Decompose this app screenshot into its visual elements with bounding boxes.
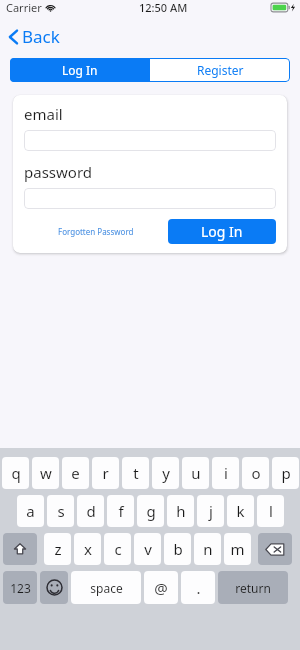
button[interactable]: Register <box>150 58 290 82</box>
staticText: d <box>86 501 96 521</box>
button[interactable] <box>24 188 276 209</box>
button[interactable]: Back <box>8 25 60 48</box>
staticText: email <box>24 104 63 124</box>
button[interactable]: space <box>71 571 141 604</box>
staticText: password <box>24 162 92 182</box>
button[interactable]: n <box>194 533 221 565</box>
button[interactable]: Log In <box>168 219 276 244</box>
staticText: 123 <box>10 580 31 596</box>
button[interactable]: p <box>272 457 299 489</box>
button[interactable]: d <box>77 495 104 527</box>
button[interactable]: Forgotten Password <box>24 219 168 244</box>
staticText: w <box>40 463 52 483</box>
staticText: h <box>176 501 186 521</box>
staticText: Log In <box>62 62 98 78</box>
staticText: l <box>269 501 273 521</box>
staticText: r <box>102 463 109 483</box>
button[interactable]: w <box>32 457 59 489</box>
button[interactable]: r <box>92 457 119 489</box>
staticText: return <box>235 580 271 596</box>
staticText: a <box>26 501 35 521</box>
staticText: Forgotten Password <box>58 226 134 237</box>
staticText: z <box>54 539 62 559</box>
button[interactable]: u <box>182 457 209 489</box>
button[interactable]: q <box>2 457 29 489</box>
button[interactable]: g <box>137 495 164 527</box>
button[interactable]: Shift <box>3 533 37 565</box>
staticText: y <box>162 463 170 483</box>
button[interactable]: t <box>122 457 149 489</box>
staticText: e <box>71 463 80 483</box>
button[interactable]: z <box>44 533 71 565</box>
staticText: 12:50 AM <box>139 0 188 15</box>
button[interactable]: y <box>152 457 179 489</box>
button[interactable]: Emoji <box>40 571 68 604</box>
button[interactable]: v <box>134 533 161 565</box>
staticText: Carrier <box>6 0 42 15</box>
staticText: o <box>251 463 261 483</box>
button[interactable]: c <box>104 533 131 565</box>
button[interactable]: o <box>242 457 269 489</box>
staticText: Back <box>22 25 60 48</box>
button[interactable]: e <box>62 457 89 489</box>
staticText: c <box>114 539 122 559</box>
button[interactable] <box>24 130 276 151</box>
button[interactable]: k <box>227 495 254 527</box>
staticText: . <box>196 578 201 598</box>
button[interactable]: @ <box>144 571 178 604</box>
button[interactable]: f <box>107 495 134 527</box>
staticText: v <box>144 539 152 559</box>
staticText: s <box>57 501 65 521</box>
staticText: q <box>11 463 21 483</box>
staticText: x <box>84 539 92 559</box>
button[interactable]: 123 <box>3 571 37 604</box>
staticText: m <box>230 539 245 559</box>
staticText: t <box>133 463 139 483</box>
staticText: f <box>118 501 124 521</box>
button[interactable]: x <box>74 533 101 565</box>
button[interactable]: j <box>197 495 224 527</box>
button[interactable]: i <box>212 457 239 489</box>
staticText: g <box>146 501 156 521</box>
staticText: j <box>209 501 213 521</box>
button[interactable]: Log In <box>10 58 150 82</box>
staticText: i <box>224 463 228 483</box>
staticText: Register <box>197 62 244 78</box>
staticText: @ <box>154 578 168 598</box>
button[interactable]: l <box>257 495 284 527</box>
staticText: p <box>281 463 291 483</box>
staticText: k <box>236 501 245 521</box>
button[interactable]: . <box>181 571 215 604</box>
staticText: u <box>191 463 201 483</box>
button[interactable]: b <box>164 533 191 565</box>
staticText: space <box>90 580 123 596</box>
button[interactable]: s <box>47 495 74 527</box>
button[interactable]: m <box>224 533 251 565</box>
button[interactable]: return <box>218 571 288 604</box>
staticText: b <box>173 539 183 559</box>
button[interactable]: a <box>17 495 44 527</box>
button[interactable]: h <box>167 495 194 527</box>
staticText: n <box>203 539 213 559</box>
staticText: Log In <box>201 222 243 241</box>
button[interactable]: Backspace <box>258 533 292 565</box>
